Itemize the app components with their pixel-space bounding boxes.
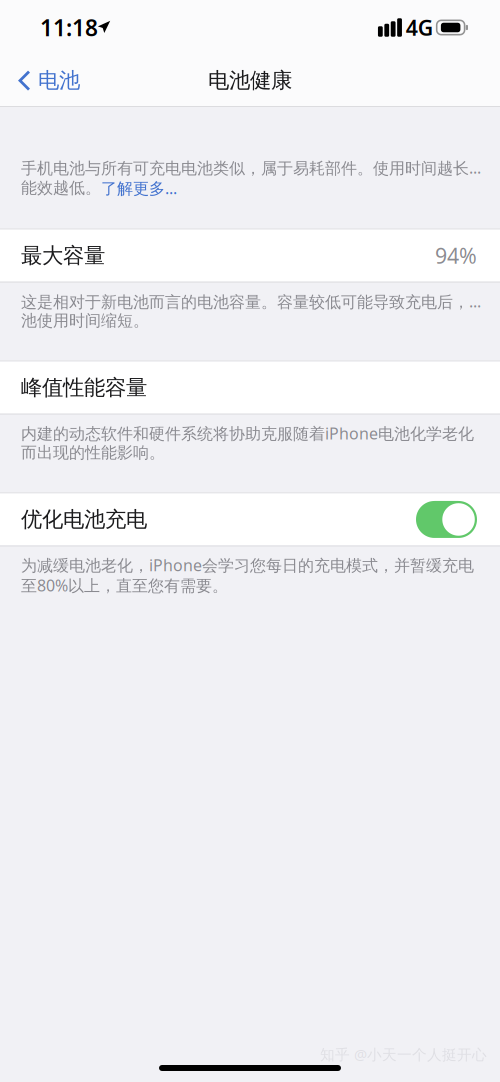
staticText: 电池 xyxy=(38,67,80,94)
button[interactable]: 电池 xyxy=(0,55,96,105)
button[interactable]: 峰值性能容量 xyxy=(0,361,500,415)
staticText: 这是相对于新电池而言的电池容量。容量较低可能导致充电后，电 xyxy=(21,291,484,312)
staticText: 了解更多... xyxy=(101,177,177,198)
staticText: 优化电池充电 xyxy=(21,506,147,533)
staticText: 4G xyxy=(406,13,433,42)
button[interactable]: 最大容量 xyxy=(0,229,500,283)
staticText: 最大容量 xyxy=(21,242,105,269)
staticText: 为减缓电池老化，iPhone会学习您每日的充电模式，并暂缓充电 xyxy=(21,554,474,576)
staticText: 11:18 xyxy=(40,12,98,42)
staticText: 而出现的性能影响。 xyxy=(21,443,165,462)
staticText: 94% xyxy=(435,241,477,270)
staticText: 至80%以上，直至您有需要。 xyxy=(21,575,228,596)
staticText: 峰值性能容量 xyxy=(21,374,147,401)
staticText: 池使用时间缩短。 xyxy=(21,311,149,331)
button[interactable]: 优化电池充电，已开启 xyxy=(416,501,477,538)
staticText: 内建的动态软件和硬件系统将协助克服随着iPhone电池化学老化 xyxy=(21,423,474,444)
staticText: 能效越低。 xyxy=(21,178,101,198)
staticText: 知乎 @小天一个人挺开心 xyxy=(320,1044,487,1064)
staticText: 手机电池与所有可充电电池类似，属于易耗部件。使用时间越长， xyxy=(21,157,484,178)
staticText: 电池健康 xyxy=(208,67,292,94)
button[interactable]: 了解更多... xyxy=(101,177,177,198)
